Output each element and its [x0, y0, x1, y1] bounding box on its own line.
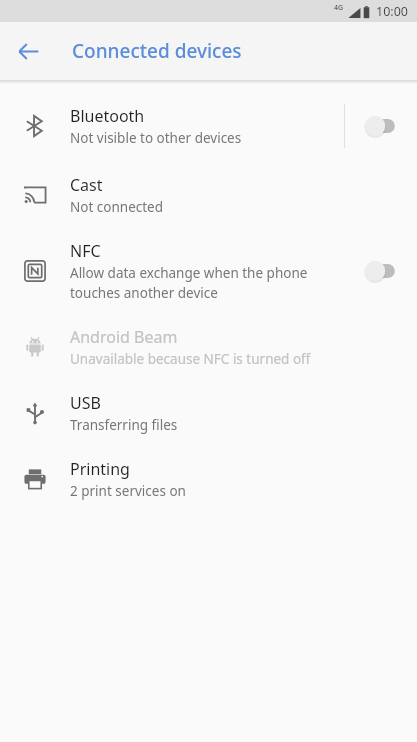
- staticText: 10:00: [376, 3, 408, 20]
- button[interactable]: Android Beam: [0, 314, 417, 380]
- staticText: Printing: [70, 458, 130, 480]
- staticText: Transferring files: [70, 416, 178, 434]
- button[interactable]: Back: [10, 33, 46, 69]
- button[interactable]: NFC switch: [344, 247, 417, 295]
- staticText: Bluetooth: [70, 105, 145, 127]
- staticText: 2 print services on: [70, 482, 186, 500]
- button[interactable]: Bluetooth: [0, 90, 417, 162]
- staticText: 4G: [334, 3, 344, 13]
- button[interactable]: Printing: [0, 446, 417, 512]
- staticText: USB: [70, 392, 101, 414]
- button[interactable]: Bluetooth switch: [345, 102, 417, 150]
- staticText: Connected devices: [72, 38, 242, 64]
- button[interactable]: Cast: [0, 162, 417, 228]
- staticText: Android Beam: [70, 326, 178, 348]
- button[interactable]: NFC: [0, 228, 417, 314]
- staticText: Allow data exchange when the phone touch…: [70, 264, 330, 302]
- staticText: NFC: [70, 240, 101, 262]
- staticText: Cast: [70, 174, 103, 196]
- button[interactable]: USB: [0, 380, 417, 446]
- staticText: Not connected: [70, 198, 164, 216]
- staticText: Unavailable because NFC is turned off: [70, 350, 311, 368]
- staticText: Not visible to other devices: [70, 129, 242, 147]
